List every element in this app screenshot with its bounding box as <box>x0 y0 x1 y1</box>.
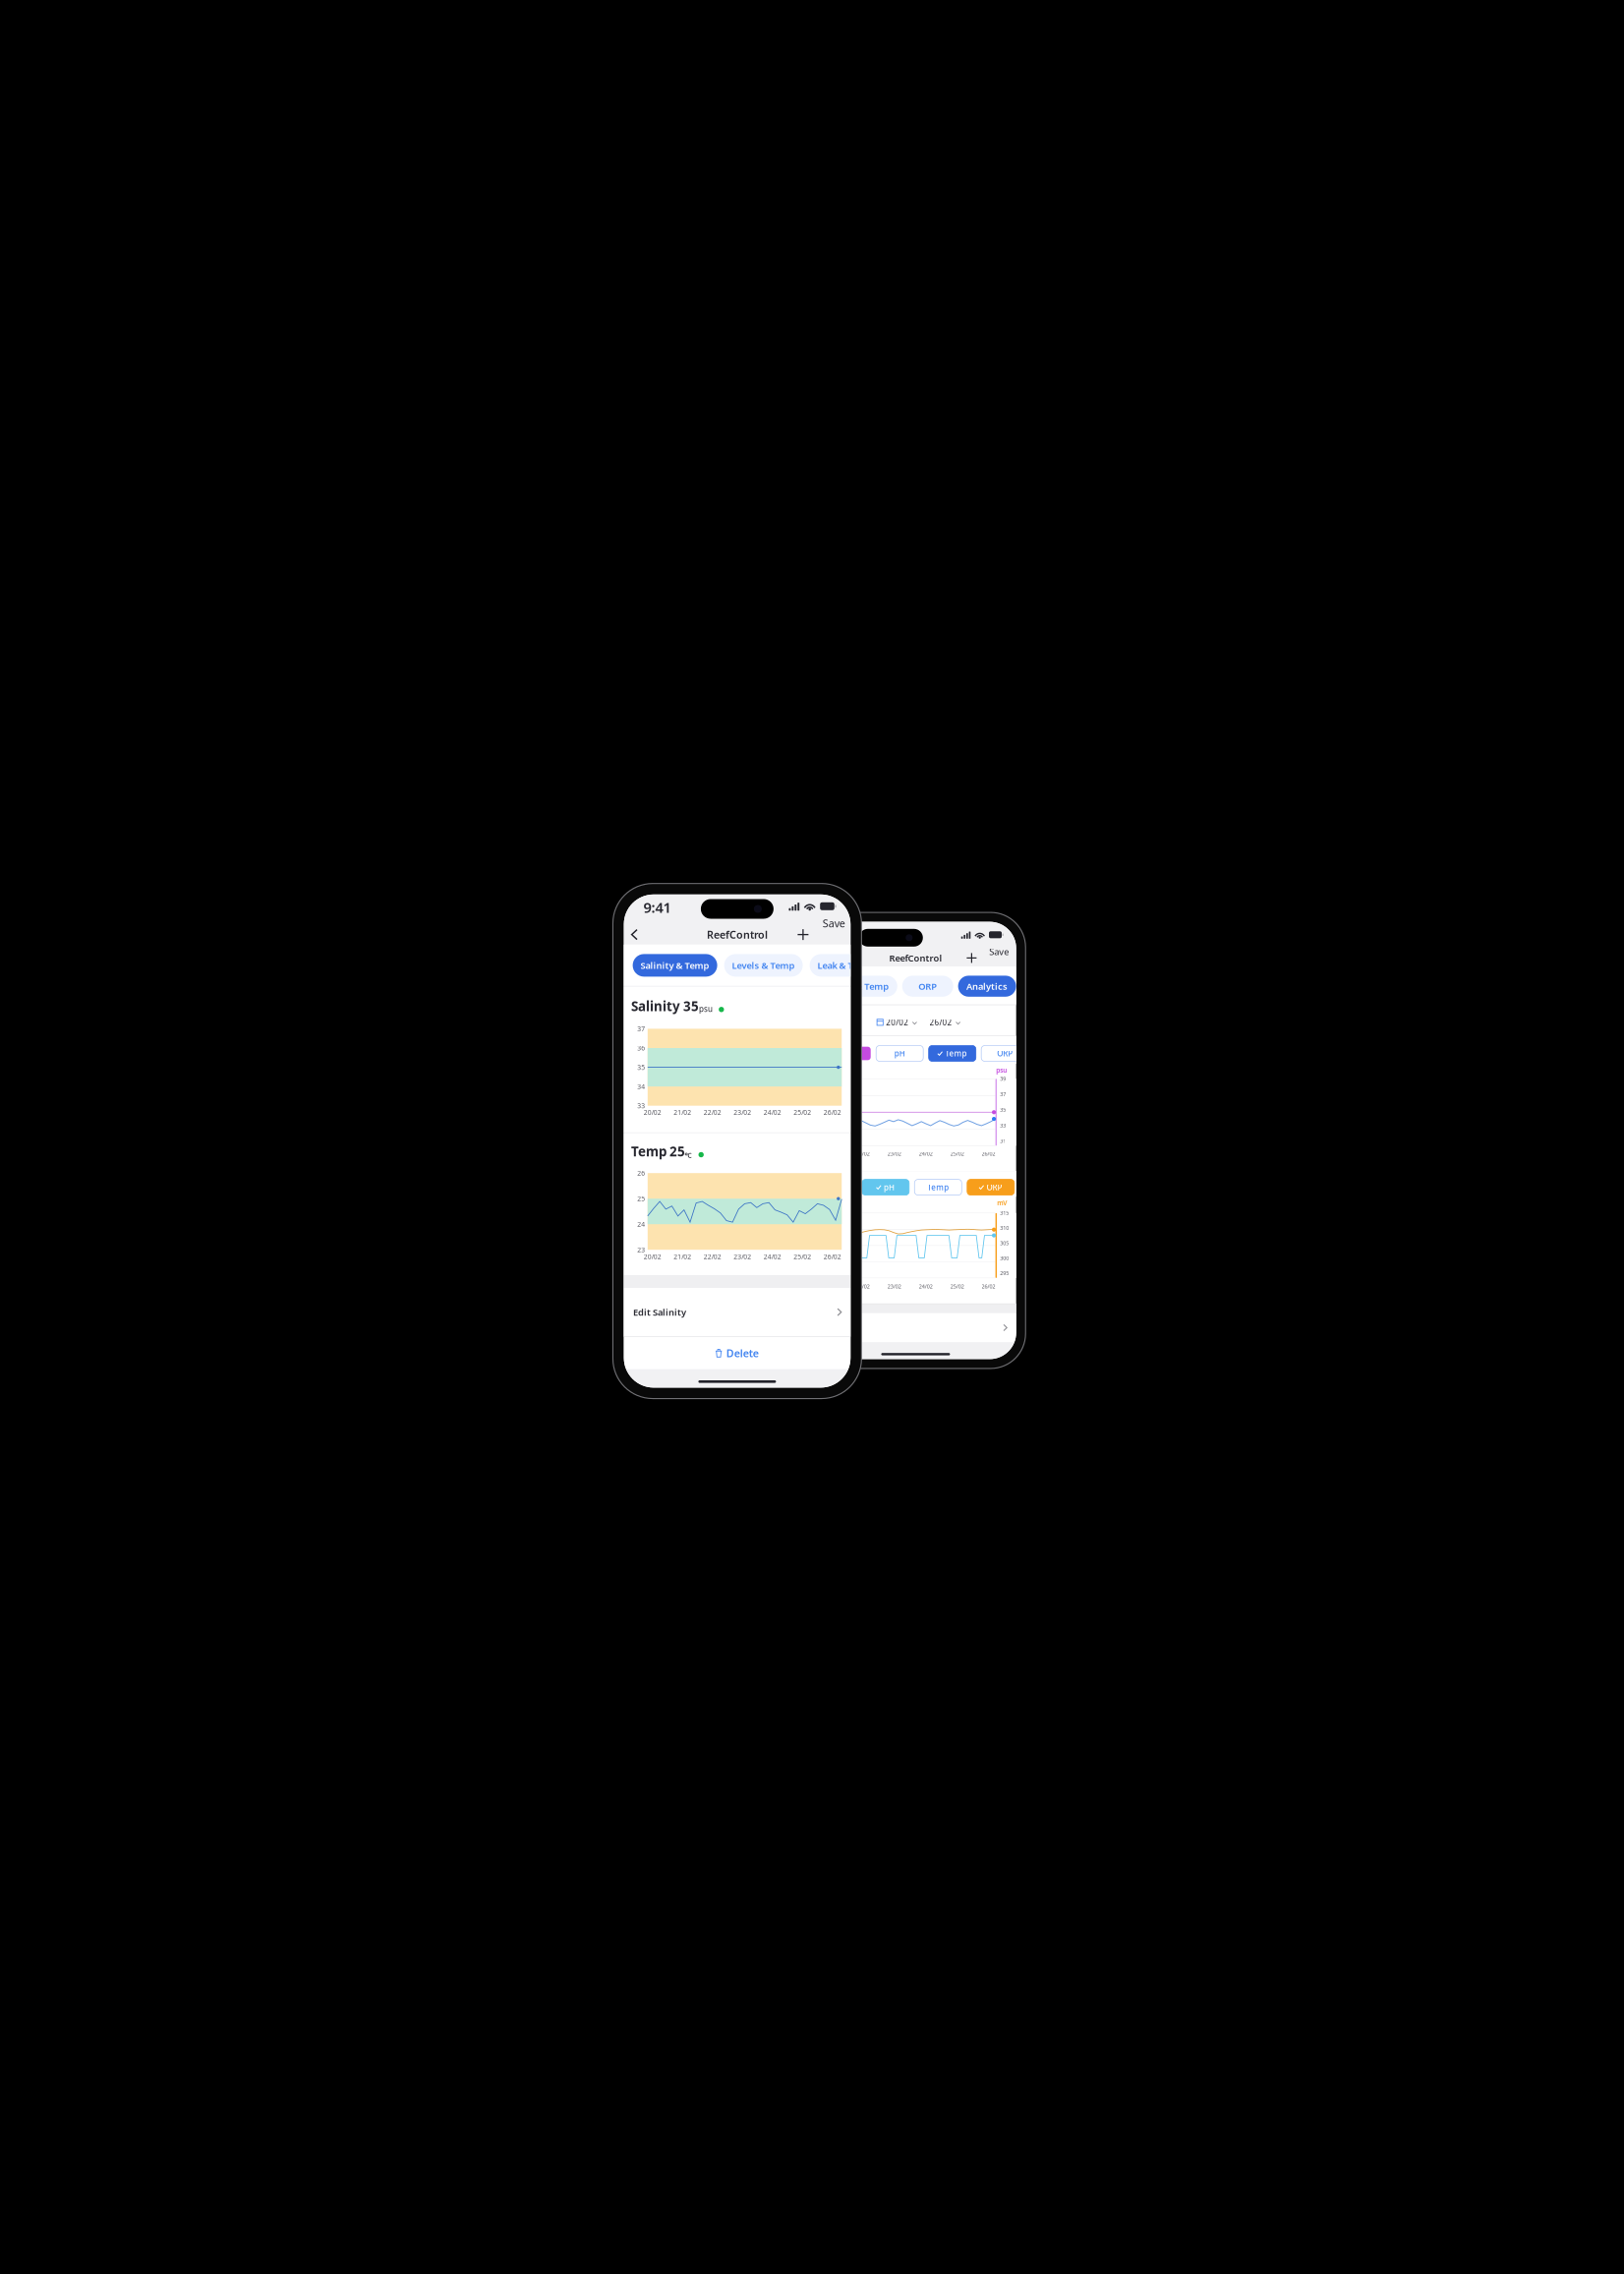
button[interactable]: Add <box>962 948 981 968</box>
button[interactable]: ORP <box>981 1046 1028 1061</box>
staticText: 33 <box>1000 1122 1006 1129</box>
button[interactable]: Save <box>621 917 848 929</box>
staticText: ORP <box>987 1182 1002 1192</box>
staticText: Delete <box>726 1346 759 1360</box>
staticText: 24 <box>637 1220 645 1229</box>
staticText: 22/02 <box>856 1283 870 1290</box>
staticText: Save <box>989 946 1009 958</box>
staticText: 26/02 <box>929 1017 952 1027</box>
button[interactable]: 20/02 <box>877 1017 917 1027</box>
button[interactable]: Back <box>626 925 643 944</box>
staticText: 31 <box>1000 1137 1006 1144</box>
staticText: Leak & Temp <box>818 959 873 971</box>
staticText: 24/02 <box>764 1252 781 1261</box>
staticText: 22/02 <box>704 1252 721 1261</box>
staticText: 305 <box>1000 1240 1009 1247</box>
staticText: 34 <box>637 1082 645 1091</box>
staticText: mV <box>997 1198 1007 1207</box>
button[interactable]: Edit Salinity <box>624 1288 851 1336</box>
staticText: 35 <box>637 1063 645 1072</box>
staticText: Temp 25 <box>631 1143 685 1160</box>
staticText: 300 <box>1000 1255 1009 1262</box>
button[interactable]: Analytics <box>958 976 1016 997</box>
button[interactable]: Salinity & Temp <box>633 954 717 977</box>
staticText: 37 <box>1000 1091 1006 1098</box>
staticText: 33 <box>637 1101 645 1110</box>
staticText: Levels & Temp <box>826 980 889 992</box>
button[interactable]: ORP <box>902 976 953 997</box>
staticText: Save <box>823 916 845 930</box>
staticText: c <box>687 1148 691 1160</box>
staticText: 36 <box>637 1044 645 1052</box>
staticText: 26/02 <box>982 1150 995 1157</box>
staticText: 26/02 <box>982 1283 995 1290</box>
button[interactable]: Temp <box>915 1179 962 1195</box>
staticText: psu <box>996 1066 1007 1074</box>
staticText: Salinity 35 <box>631 997 699 1015</box>
staticText: 22/02 <box>704 1108 721 1117</box>
staticText: Edit Salinity <box>633 1306 686 1318</box>
staticText: 26/02 <box>824 1252 841 1261</box>
staticText: ORP <box>997 1048 1013 1059</box>
staticText: 25/02 <box>794 1252 811 1261</box>
button[interactable]: Levels & Temp <box>724 954 803 977</box>
staticText: Levels & Temp <box>732 959 795 971</box>
staticText: 310 <box>1000 1224 1009 1231</box>
staticText: 26 <box>637 1169 645 1178</box>
button[interactable]: Temp <box>929 1046 976 1061</box>
staticText: 20/02 <box>644 1108 661 1117</box>
staticText: 25/02 <box>950 1150 964 1157</box>
staticText: 26/02 <box>824 1108 841 1117</box>
staticText: psu <box>699 1004 713 1014</box>
staticText: 20/02 <box>644 1252 661 1261</box>
staticText: 21/02 <box>674 1108 691 1117</box>
staticText: 25 <box>637 1194 645 1203</box>
staticText: 24/02 <box>919 1150 933 1157</box>
button[interactable]: Salinity & Temp <box>727 976 813 997</box>
staticText: 9:41 <box>644 898 671 917</box>
staticText: 295 <box>1000 1270 1009 1277</box>
staticText: 23/02 <box>734 1108 751 1117</box>
button[interactable]: pH <box>876 1046 923 1061</box>
button[interactable]: Save <box>811 946 1012 958</box>
button[interactable]: Leak & Temp <box>810 954 880 977</box>
button[interactable]: ORP <box>887 954 932 977</box>
button[interactable]: Details <box>815 1313 1016 1342</box>
staticText: ORP <box>918 980 937 992</box>
button[interactable]: Levels & Temp <box>818 976 897 997</box>
staticText: 35 <box>1000 1106 1006 1113</box>
staticText: 20/02 <box>886 1017 909 1027</box>
staticText: pH <box>894 1048 905 1059</box>
staticText: Temp <box>945 1048 967 1059</box>
staticText: Analytics <box>966 980 1008 992</box>
button[interactable]: Delete <box>624 1337 851 1369</box>
staticText: 24/02 <box>764 1108 781 1117</box>
staticText: Temp <box>927 1182 949 1192</box>
staticText: 22/02 <box>856 1150 870 1157</box>
button[interactable]: pH <box>862 1179 909 1195</box>
staticText: ReefControl <box>707 928 768 942</box>
staticText: 23/02 <box>887 1150 901 1157</box>
button[interactable]: 26/02 <box>929 1017 960 1027</box>
staticText: ORP <box>900 959 919 971</box>
staticText: 37 <box>637 1024 645 1033</box>
staticText: 39 <box>1000 1075 1006 1082</box>
staticText: ReefControl <box>889 952 942 964</box>
staticText: 23/02 <box>734 1252 751 1261</box>
button[interactable]: Add <box>792 923 814 946</box>
staticText: 25/02 <box>950 1283 964 1290</box>
staticText: 21/02 <box>674 1252 691 1261</box>
staticText: pH <box>884 1182 895 1192</box>
staticText: 23/02 <box>887 1283 901 1290</box>
button[interactable]: ORP <box>967 1179 1014 1195</box>
staticText: 20/02 <box>793 1283 807 1290</box>
staticText: 25/02 <box>794 1108 811 1117</box>
staticText: 315 <box>1000 1209 1009 1216</box>
staticText: 23 <box>637 1245 645 1254</box>
staticText: 24/02 <box>919 1283 933 1290</box>
staticText: Salinity & Temp <box>641 959 709 971</box>
staticText: 21/02 <box>825 1283 838 1290</box>
